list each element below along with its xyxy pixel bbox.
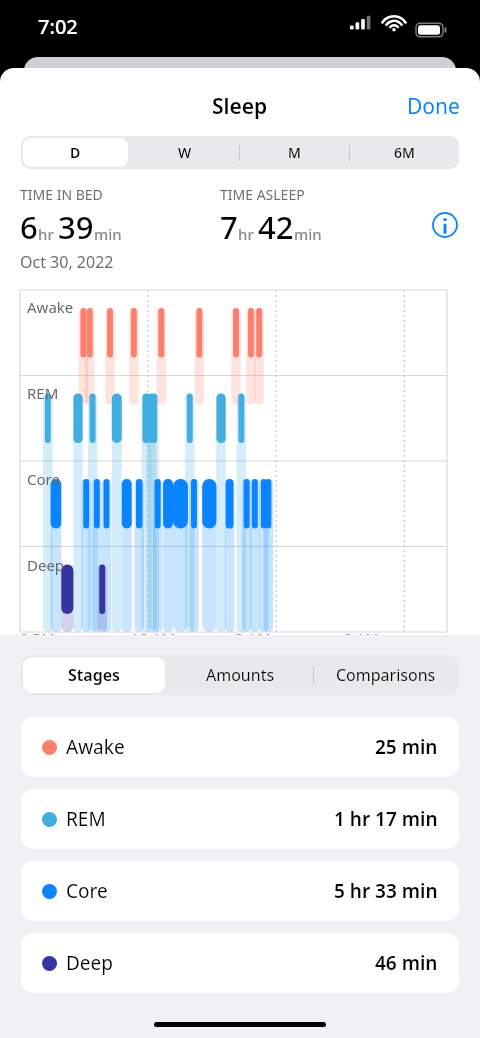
staticText: TIME IN BED xyxy=(20,185,103,204)
staticText: REM xyxy=(27,383,59,403)
staticText: 3 AM xyxy=(235,628,271,648)
button[interactable]: 6M xyxy=(349,136,459,169)
staticText: Comparisons xyxy=(336,664,436,686)
button[interactable]: Awake xyxy=(21,717,459,777)
staticText: 6M xyxy=(394,143,415,162)
button[interactable]: M xyxy=(239,136,349,169)
staticText: Deep xyxy=(66,950,113,976)
staticText: 6 AM xyxy=(343,628,379,648)
staticText: 7 xyxy=(220,206,238,248)
button[interactable]: REM xyxy=(21,789,459,849)
button[interactable]: Core xyxy=(21,861,459,921)
button[interactable]: Stages xyxy=(21,655,167,695)
staticText: 12 AM xyxy=(131,628,176,648)
button[interactable]: Amounts xyxy=(167,655,313,695)
staticText: Done xyxy=(407,92,460,121)
button[interactable]: W xyxy=(130,136,239,169)
staticText: 25 min xyxy=(375,734,438,760)
staticText: hr xyxy=(38,224,58,244)
staticText: Core xyxy=(27,469,60,489)
staticText: 46 min xyxy=(375,950,438,976)
staticText: 5 hr 33 min xyxy=(334,878,438,904)
staticText: Sleep xyxy=(212,92,268,121)
staticText: Deep xyxy=(27,555,65,575)
staticText: TIME ASLEEP xyxy=(220,185,305,204)
staticText: min xyxy=(94,224,122,244)
staticText: 39 xyxy=(58,206,94,248)
staticText: hr xyxy=(238,224,258,244)
staticText: Awake xyxy=(66,734,125,760)
staticText: min xyxy=(294,224,322,244)
button[interactable]: Comparisons xyxy=(313,655,459,695)
staticText: Oct 30, 2022 xyxy=(20,251,114,273)
staticText: M xyxy=(288,143,301,162)
staticText: Stages xyxy=(68,664,120,686)
button[interactable]: D xyxy=(21,136,130,169)
button[interactable]: Done xyxy=(387,84,480,129)
button[interactable]: Information xyxy=(430,210,460,240)
staticText: Amounts xyxy=(206,664,275,686)
staticText: 7:02 xyxy=(38,13,78,40)
staticText: REM xyxy=(66,806,106,832)
staticText: 9 PM xyxy=(20,628,56,648)
staticText: W xyxy=(178,143,192,162)
button[interactable]: Deep xyxy=(21,933,459,993)
staticText: 6 xyxy=(20,206,38,248)
staticText: D xyxy=(70,143,81,162)
staticText: 42 xyxy=(258,206,294,248)
staticText: Core xyxy=(66,878,108,904)
staticText: 1 hr 17 min xyxy=(334,806,438,832)
staticText: Awake xyxy=(27,297,74,317)
